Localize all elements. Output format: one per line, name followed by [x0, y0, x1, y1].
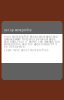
staticText: Set up work profile	[4, 29, 32, 32]
staticText: Learn more about work profiles	[4, 49, 48, 52]
button[interactable]: Learn more about work profiles	[4, 49, 48, 52]
staticText: Your work profile keeps work apps and da…	[4, 35, 60, 48]
